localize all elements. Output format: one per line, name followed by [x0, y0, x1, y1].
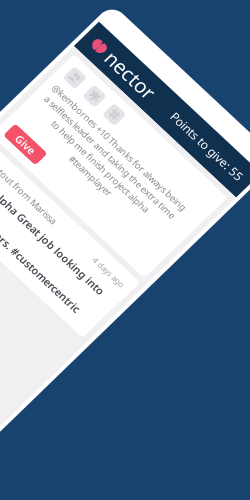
staticText: a selfless leader and taking the extra t… — [21, 107, 196, 120]
button[interactable]: Recognise a teammate — [19, 71, 36, 88]
staticText: Points to give: 55 — [122, 31, 216, 47]
staticText: to help me finish project alpha — [44, 121, 174, 133]
staticText: latest numbers. #customercentric — [23, 240, 197, 254]
button[interactable]: Give — [19, 154, 63, 171]
staticText: Shoutout from Marissa — [19, 193, 118, 205]
staticText: @kembornes +10 Thanks for always being — [19, 94, 199, 106]
button[interactable]: Add a hashtag — [73, 71, 90, 88]
staticText: nector — [34, 26, 94, 53]
staticText: Give — [29, 155, 52, 169]
staticText: #teamplayer — [81, 134, 136, 147]
staticText: @teamalpha Great job looking into the — [19, 211, 202, 239]
staticText: 4 days ago — [171, 193, 211, 204]
button[interactable]: Give a reward — [46, 71, 63, 88]
